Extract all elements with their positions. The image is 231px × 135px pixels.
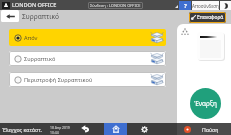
staticText: Αποσύνδεση [192,3,219,9]
button[interactable]: Home [104,123,127,135]
button[interactable]: Night mode [220,1,231,10]
button[interactable]: Έναρξη [190,88,221,119]
button[interactable]: Settings [135,123,153,135]
staticText: Απόν [24,34,38,42]
other: Network [181,28,189,35]
button[interactable]: Back [76,123,95,135]
staticText: Σύνδεση : LONDON OFFICE [90,3,141,8]
button[interactable]: Συρραπτικό [9,51,166,66]
staticText: Συρραπτικό [24,55,56,63]
staticText: Συρραπτικό [22,12,59,21]
staticText: Παύση [202,126,219,133]
staticText: Έναρξη [194,99,217,108]
button[interactable]: Help [179,1,191,10]
button[interactable]: Back [1,10,19,22]
staticText: ? [184,2,187,10]
staticText: Έλεγχος κατάστ. [2,126,43,133]
button[interactable]: Απόν [9,29,166,46]
button[interactable]: Επαναφορά [189,12,226,23]
staticText: 10:44 [50,130,59,135]
button[interactable]: Περιστροφή Συρραπτικού [9,72,166,87]
button[interactable]: Αποσύνδεση [192,1,219,10]
staticText: LONDON OFFICE [12,1,57,9]
staticText: Περιστροφή Συρραπτικού [24,76,93,84]
staticText: Επαναφορά [197,14,224,21]
button[interactable]: Παύση [177,123,231,135]
staticText: 18 Απρ 2019 [50,125,70,130]
